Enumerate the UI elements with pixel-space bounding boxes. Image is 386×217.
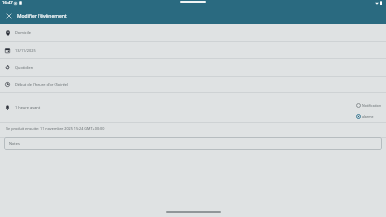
- button[interactable]: Quotidien: [0, 59, 386, 76]
- staticText: 13/11/2025: [15, 48, 36, 53]
- staticText: Notes: [9, 141, 20, 146]
- staticText: Domicile: [15, 30, 31, 35]
- staticText: Notification: [362, 103, 382, 108]
- button[interactable]: Domicile: [0, 24, 386, 41]
- staticText: Modifier l'évènement: [17, 13, 67, 20]
- staticText: Se produit ensuite: 11 novembre 2025 15:…: [6, 126, 105, 131]
- staticText: 16:47: [2, 0, 13, 6]
- staticText: alarme: [362, 114, 374, 119]
- staticText: Quotidien: [15, 65, 34, 70]
- button[interactable]: Fermer: [0, 8, 17, 24]
- staticText: 1 heure avant: [15, 105, 41, 110]
- button[interactable]: 1 heure avant: [0, 93, 386, 122]
- button[interactable]: Début de l'heure d'or (Soirée): [0, 77, 386, 92]
- button[interactable]: 13/11/2025: [0, 42, 386, 58]
- staticText: Début de l'heure d'or (Soirée): [15, 82, 69, 87]
- button[interactable]: Notification: [356, 103, 382, 108]
- button[interactable]: Notes: [4, 137, 382, 150]
- button[interactable]: alarme: [356, 114, 374, 119]
